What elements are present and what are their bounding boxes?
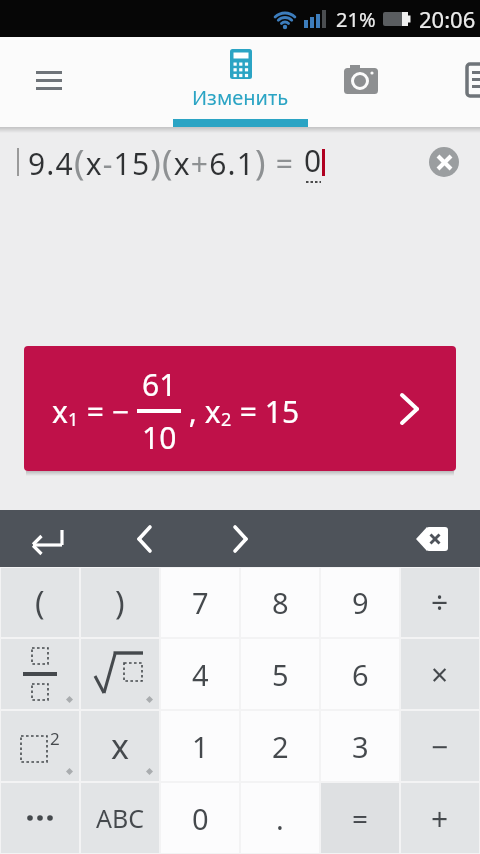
staticText: 1 — [192, 727, 209, 766]
button[interactable]: Изменить — [192, 49, 289, 111]
button[interactable]: × — [401, 639, 479, 709]
staticText: 3 — [352, 727, 369, 766]
staticText: Изменить — [192, 84, 289, 111]
staticText: 20:06 — [419, 4, 476, 34]
staticText: 1 — [68, 407, 79, 432]
staticText: ( — [35, 581, 45, 625]
staticText: 61 — [142, 364, 177, 405]
staticText: × — [431, 654, 449, 695]
staticText: − — [431, 726, 449, 767]
staticText: x — [52, 391, 68, 432]
button[interactable]: x — [24, 346, 456, 471]
staticText: = 15 — [232, 391, 300, 432]
button[interactable]: . — [241, 783, 319, 853]
button[interactable]: 3 — [321, 711, 399, 781]
button[interactable]: 9 — [321, 568, 399, 637]
button[interactable]: − — [401, 711, 479, 781]
button[interactable]: 7 — [161, 568, 239, 637]
button[interactable] — [116, 517, 172, 561]
staticText: 21% — [336, 6, 376, 33]
staticText: 6 — [352, 655, 369, 694]
staticText: ÷ — [431, 582, 449, 623]
staticText: 0 — [304, 140, 322, 181]
staticText: ) — [115, 581, 125, 625]
button[interactable]: 2 — [241, 711, 319, 781]
staticText: 9.4(x-15)(x+6.1) = — [28, 138, 304, 186]
button[interactable] — [28, 62, 70, 98]
button[interactable] — [212, 517, 268, 561]
staticText: 2 — [272, 727, 289, 766]
button[interactable] — [18, 517, 78, 561]
button[interactable]: 1 — [161, 711, 239, 781]
staticText: 2 — [221, 407, 232, 432]
staticText: 9 — [352, 583, 369, 622]
button[interactable]: 4 — [161, 639, 239, 709]
button[interactable] — [429, 147, 459, 177]
button[interactable]: ( — [1, 568, 79, 637]
staticText: ABC — [96, 801, 145, 835]
staticText: 2 — [50, 727, 60, 750]
button[interactable]: 0 — [161, 783, 239, 853]
staticText: x — [111, 723, 129, 769]
button[interactable] — [467, 64, 480, 96]
button[interactable]: 5 — [241, 639, 319, 709]
staticText: 7 — [192, 583, 209, 622]
staticText: . — [276, 799, 284, 838]
staticText: + — [431, 798, 449, 839]
staticText: , x — [181, 391, 221, 432]
button[interactable]: x — [81, 711, 159, 781]
staticText: 8 — [272, 583, 289, 622]
button[interactable] — [336, 57, 386, 103]
button[interactable]: 2 — [1, 711, 79, 781]
button[interactable]: ÷ — [401, 568, 479, 637]
button[interactable] — [81, 639, 159, 709]
button[interactable]: ABC — [81, 783, 159, 853]
staticText: 5 — [272, 655, 289, 694]
button[interactable]: 6 — [321, 639, 399, 709]
button[interactable]: + — [401, 783, 479, 853]
button[interactable]: 8 — [241, 568, 319, 637]
button[interactable]: ) — [81, 568, 159, 637]
staticText: 10 — [142, 417, 177, 458]
button[interactable] — [404, 517, 460, 561]
button[interactable]: = — [321, 783, 399, 853]
staticText: = — [352, 799, 369, 837]
staticText: 4 — [192, 655, 209, 694]
button[interactable] — [1, 783, 79, 853]
staticText: = − — [79, 391, 137, 432]
staticText: 0 — [192, 799, 209, 838]
button[interactable] — [1, 639, 79, 709]
